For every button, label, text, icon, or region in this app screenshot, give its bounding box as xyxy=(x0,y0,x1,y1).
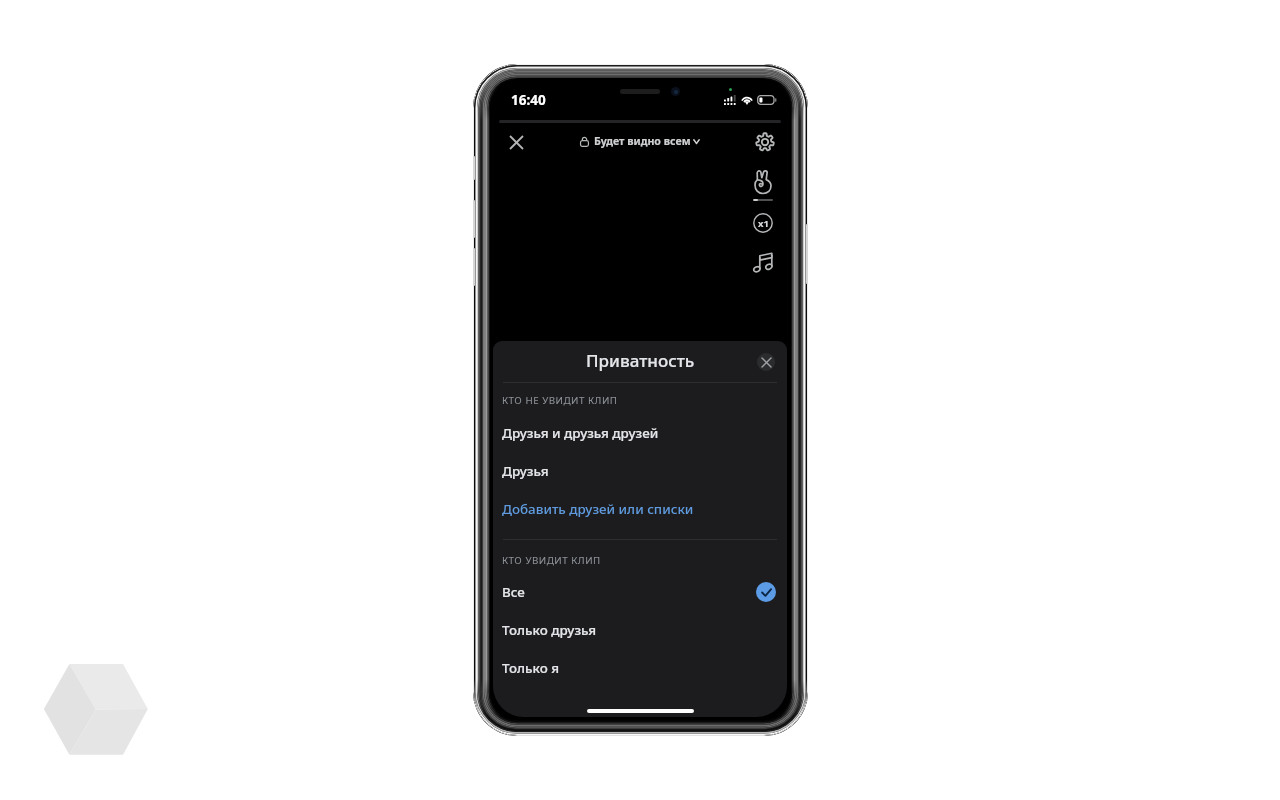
button[interactable]: Все xyxy=(493,573,787,611)
staticText: x1 xyxy=(758,217,769,230)
button[interactable]: Добавить друзей или списки xyxy=(493,490,787,528)
button[interactable]: Музыка xyxy=(748,247,778,277)
button[interactable]: Жесты xyxy=(748,167,778,197)
button[interactable]: Скорость xyxy=(748,208,778,238)
staticText: Все xyxy=(502,583,525,601)
staticText: Добавить друзей или списки xyxy=(502,500,694,518)
staticText: Друзья xyxy=(502,462,549,480)
staticText: 16:40 xyxy=(511,91,546,109)
staticText: КТО УВИДИТ КЛИП xyxy=(502,554,601,567)
button[interactable]: Закрыть xyxy=(757,353,775,371)
staticText: Только друзья xyxy=(502,621,597,639)
staticText: Только я xyxy=(502,659,560,677)
staticText: Друзья и друзья друзей xyxy=(502,424,659,442)
button[interactable]: Друзья xyxy=(493,452,787,490)
staticText: Будет видно всем xyxy=(594,134,691,148)
button[interactable]: Друзья и друзья друзей xyxy=(493,414,787,452)
button[interactable]: Настройки xyxy=(750,127,780,157)
button[interactable]: Только я xyxy=(493,649,787,687)
button[interactable]: Закрыть xyxy=(501,127,531,157)
staticText: Приватность xyxy=(586,349,695,372)
button[interactable]: Только друзья xyxy=(493,611,787,649)
staticText: КТО НЕ УВИДИТ КЛИП xyxy=(502,394,618,407)
button[interactable]: Будет видно всем xyxy=(580,134,700,148)
